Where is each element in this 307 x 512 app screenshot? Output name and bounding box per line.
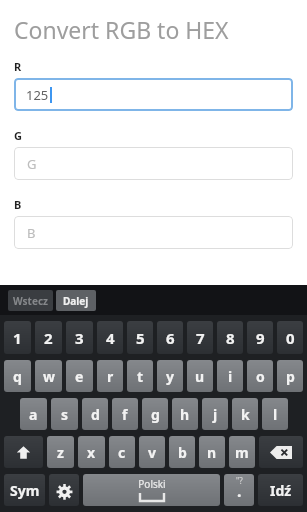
button[interactable]: 125 bbox=[14, 78, 293, 111]
staticText: 5 bbox=[136, 328, 145, 348]
staticText: 1 bbox=[13, 328, 22, 348]
button[interactable]: l bbox=[262, 398, 288, 430]
button[interactable]: h bbox=[172, 398, 198, 430]
button[interactable]: z bbox=[47, 436, 74, 468]
staticText: c bbox=[118, 443, 126, 462]
staticText: w bbox=[43, 367, 55, 386]
button[interactable]: 2 bbox=[35, 321, 62, 354]
staticText: Convert RGB to HEX bbox=[14, 14, 229, 45]
staticText: 4 bbox=[106, 328, 115, 348]
button[interactable]: B bbox=[14, 216, 293, 249]
staticText: Idź bbox=[270, 481, 292, 500]
staticText: B bbox=[14, 197, 22, 212]
button[interactable]: u bbox=[187, 360, 213, 392]
button[interactable]: p bbox=[277, 360, 303, 392]
button[interactable]: f bbox=[112, 398, 138, 430]
staticText: G bbox=[27, 155, 37, 173]
staticText: p bbox=[286, 367, 295, 386]
button[interactable]: t bbox=[127, 360, 153, 392]
button[interactable]: s bbox=[51, 398, 78, 430]
button[interactable]: Backspace bbox=[259, 436, 303, 468]
button[interactable]: y bbox=[157, 360, 183, 392]
staticText: G bbox=[14, 128, 22, 143]
staticText: k bbox=[241, 405, 250, 424]
staticText: j bbox=[213, 405, 218, 424]
staticText: g bbox=[151, 405, 160, 424]
staticText: "? bbox=[236, 475, 243, 486]
staticText: Sym bbox=[10, 481, 40, 500]
staticText: z bbox=[57, 443, 64, 462]
staticText: 0 bbox=[286, 328, 295, 348]
staticText: a bbox=[29, 405, 38, 424]
button[interactable]: g bbox=[142, 398, 168, 430]
button[interactable]: m bbox=[229, 436, 255, 468]
staticText: m bbox=[235, 443, 249, 462]
button[interactable]: Keyboard settings bbox=[49, 474, 79, 506]
staticText: Polski bbox=[138, 477, 166, 491]
staticText: l bbox=[273, 405, 278, 424]
button[interactable]: b bbox=[169, 436, 195, 468]
button[interactable]: 7 bbox=[187, 321, 213, 354]
staticText: e bbox=[75, 367, 84, 386]
button[interactable]: i bbox=[217, 360, 243, 392]
button[interactable]: w bbox=[35, 360, 62, 392]
staticText: 7 bbox=[196, 328, 205, 348]
button[interactable]: Shift bbox=[4, 436, 43, 468]
staticText: b bbox=[178, 443, 187, 462]
button[interactable]: k bbox=[232, 398, 258, 430]
staticText: 8 bbox=[226, 328, 235, 348]
staticText: h bbox=[180, 405, 190, 424]
staticText: t bbox=[137, 367, 144, 386]
staticText: 3 bbox=[75, 328, 84, 348]
button[interactable]: Sym bbox=[4, 474, 45, 506]
staticText: x bbox=[87, 443, 96, 462]
staticText: r bbox=[107, 367, 114, 386]
button[interactable]: n bbox=[199, 436, 225, 468]
staticText: 125 bbox=[26, 86, 49, 104]
button[interactable]: Wstecz bbox=[8, 290, 53, 311]
staticText: o bbox=[256, 367, 265, 386]
button[interactable]: 0 bbox=[277, 321, 303, 354]
button[interactable]: 8 bbox=[217, 321, 243, 354]
button[interactable]: Idź bbox=[258, 474, 303, 506]
staticText: v bbox=[148, 443, 156, 462]
button[interactable]: G bbox=[14, 147, 293, 180]
staticText: n bbox=[207, 443, 217, 462]
button[interactable]: r bbox=[97, 360, 123, 392]
button[interactable]: 6 bbox=[157, 321, 183, 354]
button[interactable]: 4 bbox=[97, 321, 123, 354]
staticText: u bbox=[195, 367, 205, 386]
button[interactable]: d bbox=[82, 398, 108, 430]
staticText: Dalej bbox=[63, 294, 89, 308]
staticText: i bbox=[228, 367, 233, 386]
staticText: R bbox=[14, 59, 22, 74]
button[interactable]: Space bbox=[83, 474, 220, 506]
button[interactable]: 1 bbox=[4, 321, 31, 354]
staticText: d bbox=[91, 405, 100, 424]
staticText: f bbox=[122, 405, 128, 424]
staticText: Wstecz bbox=[13, 294, 48, 308]
staticText: . bbox=[237, 480, 242, 502]
button[interactable]: e bbox=[66, 360, 93, 392]
button[interactable]: c bbox=[109, 436, 135, 468]
staticText: B bbox=[27, 224, 36, 242]
button[interactable]: Period and punctuation bbox=[224, 474, 254, 506]
staticText: s bbox=[61, 405, 69, 424]
button[interactable]: x bbox=[78, 436, 105, 468]
button[interactable]: Dalej bbox=[56, 290, 96, 311]
staticText: q bbox=[13, 367, 22, 386]
button[interactable]: j bbox=[202, 398, 228, 430]
button[interactable]: 9 bbox=[247, 321, 273, 354]
button[interactable]: q bbox=[4, 360, 31, 392]
staticText: 6 bbox=[166, 328, 175, 348]
staticText: y bbox=[166, 367, 174, 386]
button[interactable]: 3 bbox=[66, 321, 93, 354]
button[interactable]: v bbox=[139, 436, 165, 468]
button[interactable]: 5 bbox=[127, 321, 153, 354]
staticText: 2 bbox=[44, 328, 53, 348]
button[interactable]: o bbox=[247, 360, 273, 392]
button[interactable]: a bbox=[20, 398, 47, 430]
staticText: 9 bbox=[256, 328, 265, 348]
